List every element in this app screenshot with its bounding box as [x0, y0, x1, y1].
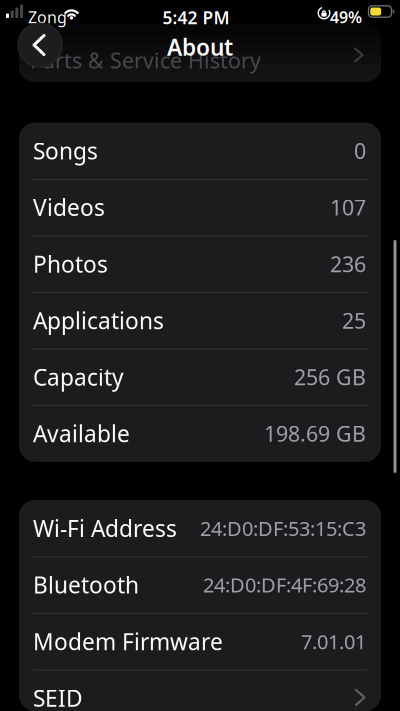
staticText: Wi-Fi Address — [33, 513, 177, 543]
staticText: SEID — [33, 683, 83, 711]
staticText: 49% — [330, 6, 362, 28]
staticText: 24:D0:DF:53:15:C3 — [200, 515, 366, 542]
button[interactable]: Back — [18, 23, 62, 67]
staticText: Applications — [33, 305, 164, 335]
staticText: 5:42 PM — [162, 6, 229, 29]
staticText: 236 — [330, 250, 366, 278]
staticText: Available — [33, 418, 130, 449]
button[interactable]: SEID — [19, 670, 381, 711]
staticText: 0 — [354, 137, 366, 165]
staticText: About — [167, 32, 233, 62]
staticText: Photos — [33, 249, 108, 279]
staticText: 24:D0:DF:4F:69:28 — [203, 571, 366, 598]
staticText: 198.69 GB — [264, 419, 366, 448]
staticText: Parts & Service History — [30, 46, 261, 74]
staticText: Zong — [28, 6, 67, 28]
staticText: 107 — [330, 193, 366, 221]
staticText: Videos — [33, 192, 105, 222]
staticText: 25 — [342, 306, 366, 335]
button[interactable]: Parts & Service History — [19, 24, 381, 82]
staticText: Modem Firmware — [33, 626, 223, 656]
staticText: 256 GB — [294, 363, 366, 391]
staticText: Songs — [33, 136, 98, 166]
staticText: Capacity — [33, 362, 124, 392]
staticText: Bluetooth — [33, 570, 139, 600]
staticText: 7.01.01 — [301, 628, 366, 655]
